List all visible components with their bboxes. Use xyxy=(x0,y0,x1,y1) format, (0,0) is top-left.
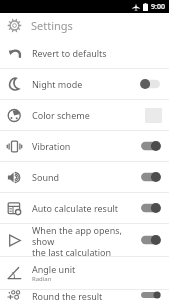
staticText: Auto calculate result xyxy=(32,202,119,214)
button[interactable]: Revert to defaults xyxy=(0,38,169,68)
button[interactable]: Vibration xyxy=(0,131,169,161)
button[interactable]: Toggle, on xyxy=(139,170,162,184)
button[interactable]: Night mode xyxy=(0,69,169,99)
button[interactable]: Round the result xyxy=(0,290,169,300)
staticText: When the app opens, show the last calcul… xyxy=(32,224,139,256)
staticText: Radian xyxy=(32,275,52,283)
button[interactable]: Angle unit xyxy=(0,257,169,289)
staticText: Revert to defaults xyxy=(32,47,107,59)
button[interactable]: Auto calculate result xyxy=(0,193,169,223)
button[interactable]: Toggle, on xyxy=(139,201,162,215)
staticText: Vibration xyxy=(32,140,71,152)
button[interactable]: Sound xyxy=(0,162,169,192)
staticText: Color scheme xyxy=(32,109,90,121)
button[interactable]: Toggle, on xyxy=(139,139,162,153)
button[interactable]: Toggle, off xyxy=(139,77,162,91)
staticText: Settings xyxy=(31,18,73,33)
button[interactable]: Settings xyxy=(0,13,169,38)
staticText: 9:00 xyxy=(151,2,165,12)
button[interactable]: When the app opens, show the last calcul… xyxy=(0,224,169,256)
staticText: Angle unit xyxy=(32,263,76,275)
staticText: Round the result xyxy=(32,290,103,300)
button[interactable]: Toggle, on xyxy=(139,233,162,247)
staticText: Night mode xyxy=(32,78,83,90)
staticText: Sound xyxy=(32,171,60,183)
button[interactable]: Color scheme xyxy=(0,100,169,130)
button[interactable]: Toggle, on xyxy=(139,290,162,300)
